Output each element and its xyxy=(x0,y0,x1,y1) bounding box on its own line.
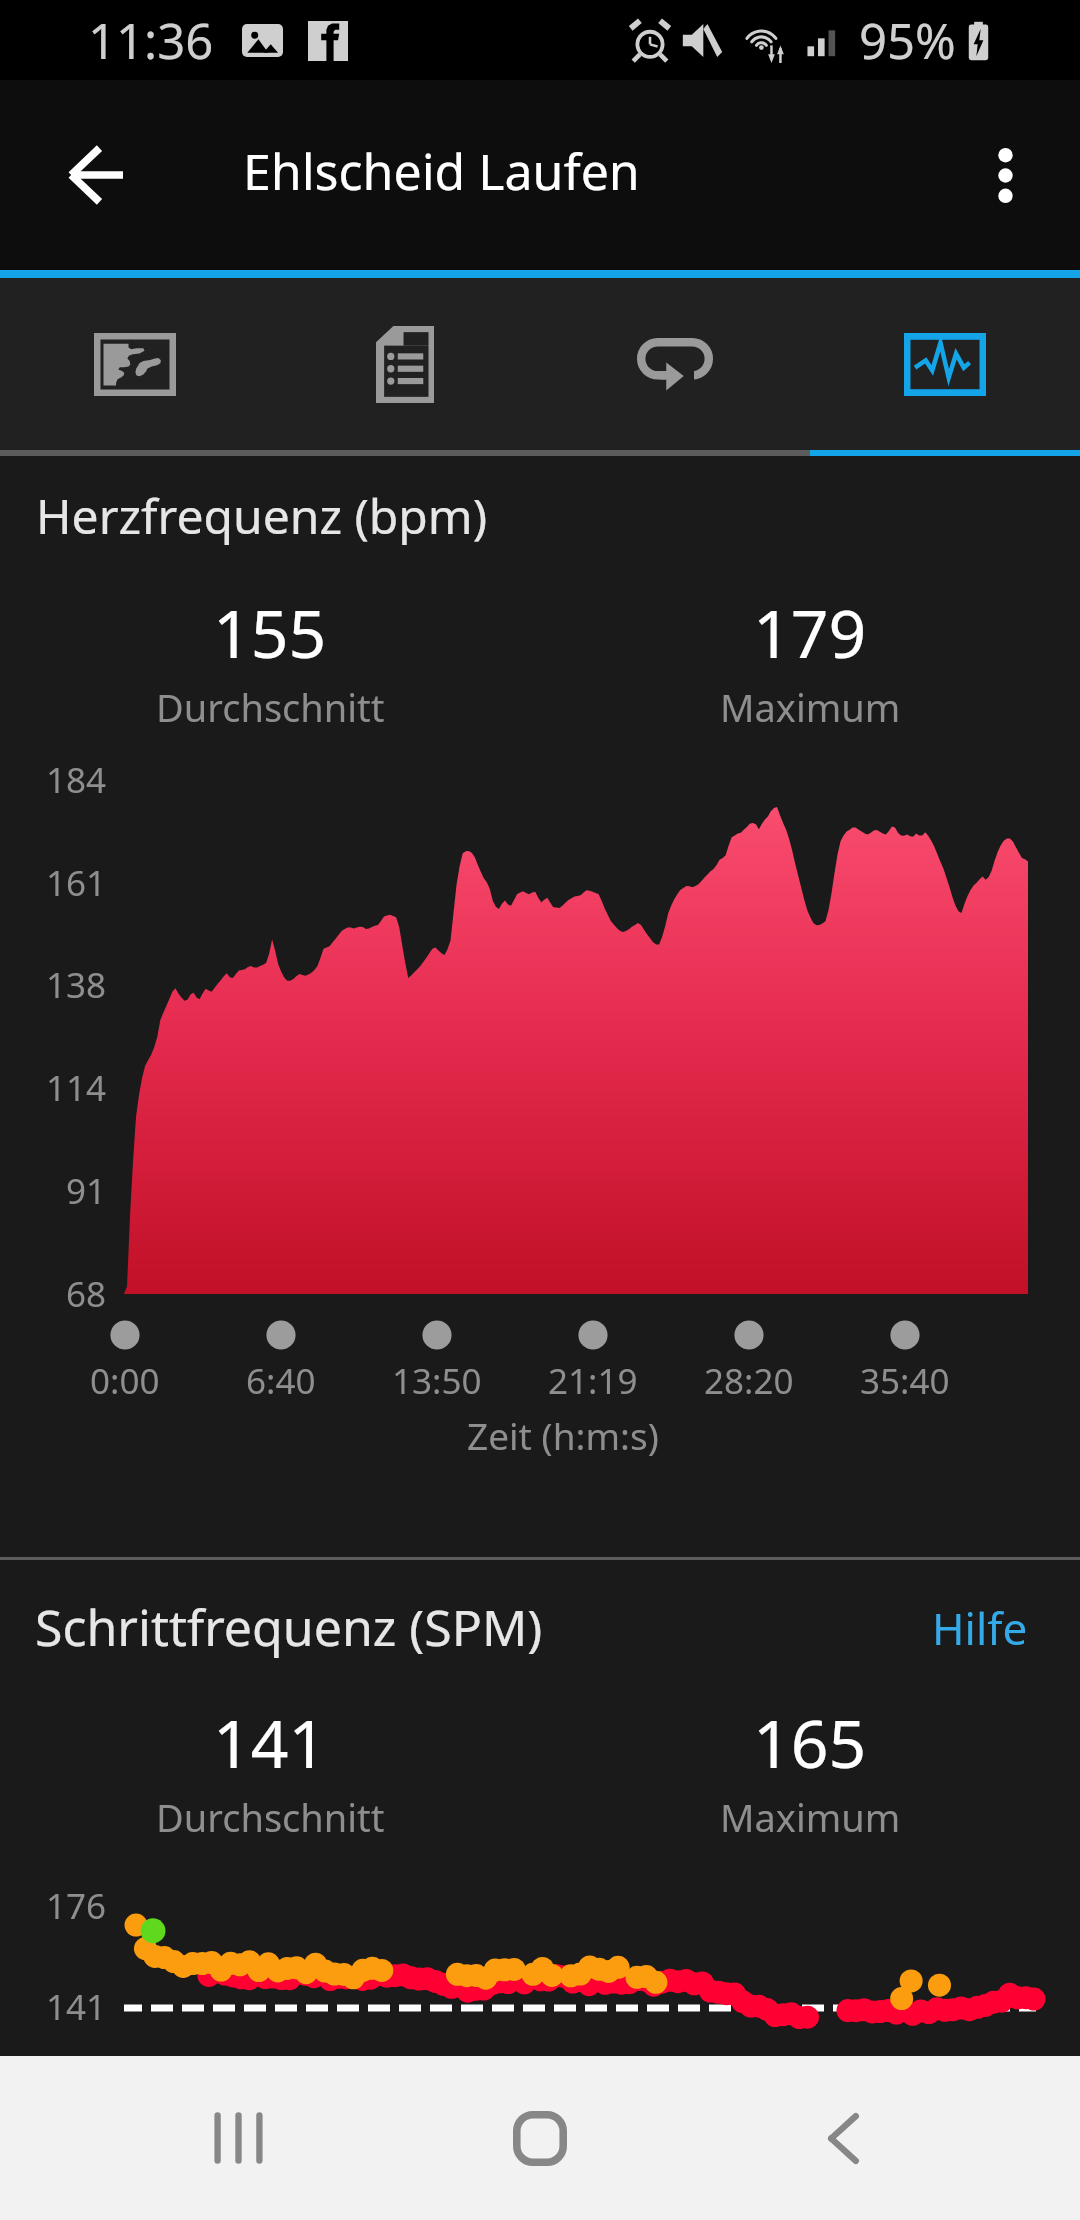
staticText: 155 xyxy=(213,587,327,677)
staticText: Durchschnitt xyxy=(156,1791,385,1843)
button[interactable]: Back xyxy=(778,2073,908,2203)
staticText: 35:40 xyxy=(860,1357,950,1405)
staticText: 138 xyxy=(46,961,107,1009)
button[interactable]: Details xyxy=(270,278,540,450)
staticText: 141 xyxy=(46,1983,107,2031)
staticText: 21:19 xyxy=(548,1357,638,1405)
staticText: 95% xyxy=(859,7,956,74)
button[interactable]: Charts xyxy=(810,278,1080,450)
staticText: Ehlscheid Laufen xyxy=(243,137,640,205)
button[interactable]: Hilfe xyxy=(882,1598,1028,1658)
staticText: Herzfrequenz (bpm) xyxy=(36,483,488,548)
button[interactable]: Home xyxy=(475,2073,605,2203)
staticText: 179 xyxy=(753,587,867,677)
staticText: Zeit (h:m:s) xyxy=(467,1410,659,1460)
staticText: 13:50 xyxy=(392,1357,482,1405)
button[interactable]: Laps xyxy=(540,278,810,450)
staticText: 161 xyxy=(46,859,107,907)
staticText: 28:20 xyxy=(704,1357,794,1405)
staticText: Maximum xyxy=(720,1791,901,1843)
staticText: 141 xyxy=(213,1697,327,1787)
button[interactable]: Map xyxy=(0,278,270,450)
button[interactable]: More options xyxy=(955,125,1055,225)
staticText: 114 xyxy=(46,1064,107,1112)
staticText: 176 xyxy=(46,1882,107,1930)
staticText: 0:00 xyxy=(90,1357,160,1405)
staticText: 6:40 xyxy=(246,1357,316,1405)
button[interactable]: Recent apps xyxy=(173,2073,303,2203)
staticText: Hilfe xyxy=(932,1598,1028,1658)
staticText: 165 xyxy=(753,1697,867,1787)
staticText: 68 xyxy=(66,1270,107,1318)
button[interactable]: Back xyxy=(40,120,150,230)
staticText: 184 xyxy=(46,756,107,804)
staticText: 11:36 xyxy=(88,7,214,74)
staticText: Maximum xyxy=(720,681,901,733)
staticText: Schrittfrequenz (SPM) xyxy=(35,1593,543,1661)
staticText: 91 xyxy=(66,1167,107,1215)
staticText: Durchschnitt xyxy=(156,681,385,733)
